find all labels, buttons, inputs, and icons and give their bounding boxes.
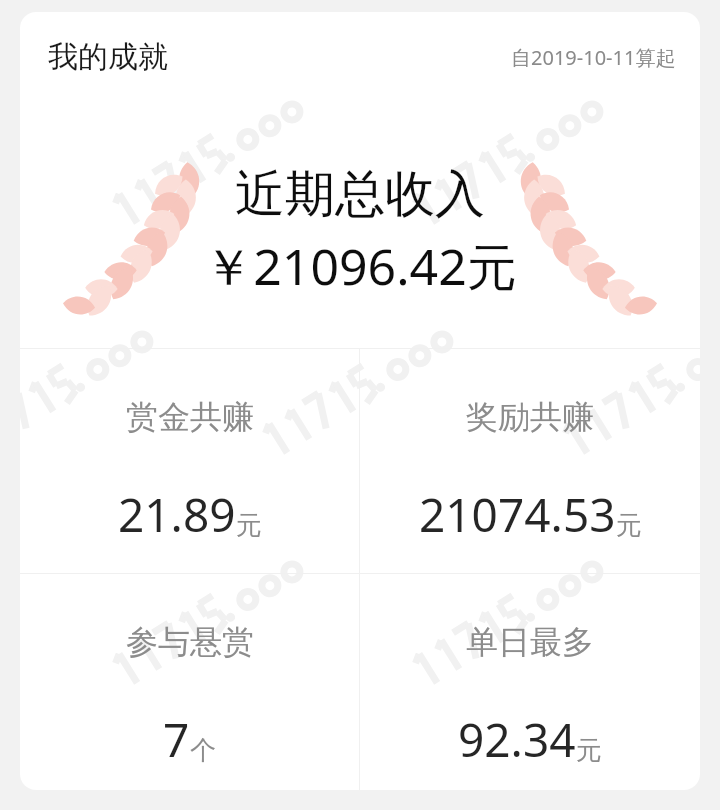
- staticText: 元: [616, 509, 642, 542]
- button[interactable]: 参与悬赏: [20, 574, 359, 790]
- staticText: ￥21096.42元: [203, 232, 517, 300]
- staticText: 参与悬赏: [126, 622, 254, 662]
- staticText: 元: [576, 734, 602, 767]
- staticText: 7: [163, 708, 190, 771]
- button[interactable]: 赏金共赚: [20, 349, 359, 573]
- staticText: 近期总收入: [235, 163, 485, 226]
- staticText: 元: [236, 509, 262, 542]
- staticText: 奖励共赚: [466, 397, 594, 437]
- button[interactable]: 单日最多: [360, 574, 700, 790]
- staticText: 个: [190, 734, 216, 767]
- staticText: 21.89: [118, 483, 236, 546]
- staticText: 单日最多: [466, 622, 594, 662]
- button[interactable]: 奖励共赚: [360, 349, 700, 573]
- staticText: 我的成就: [48, 38, 168, 76]
- staticText: 92.34: [458, 708, 576, 771]
- staticText: 赏金共赚: [126, 397, 254, 437]
- staticText: 21074.53: [419, 483, 616, 546]
- staticText: 自2019-10-11算起: [511, 44, 676, 71]
